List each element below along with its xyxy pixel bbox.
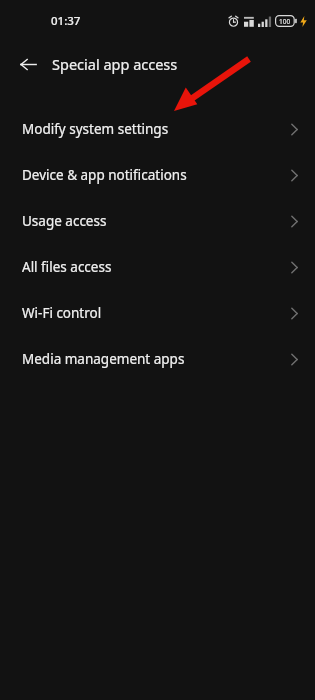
- button[interactable]: Media management apps: [0, 336, 315, 382]
- button[interactable]: Back: [12, 48, 44, 80]
- button[interactable]: All files access: [0, 244, 315, 290]
- button[interactable]: Wi-Fi control: [0, 290, 315, 336]
- button[interactable]: Usage access: [0, 198, 315, 244]
- staticText: Usage access: [22, 212, 107, 230]
- staticText: Device & app notifications: [22, 166, 187, 184]
- staticText: Media management apps: [22, 350, 185, 368]
- button[interactable]: Modify system settings: [0, 106, 315, 152]
- staticText: 01:37: [51, 13, 81, 29]
- button[interactable]: Device & app notifications: [0, 152, 315, 198]
- staticText: 100: [279, 17, 291, 26]
- staticText: Special app access: [52, 54, 178, 74]
- staticText: Modify system settings: [22, 120, 169, 138]
- staticText: All files access: [22, 258, 112, 276]
- staticText: Wi-Fi control: [22, 304, 102, 322]
